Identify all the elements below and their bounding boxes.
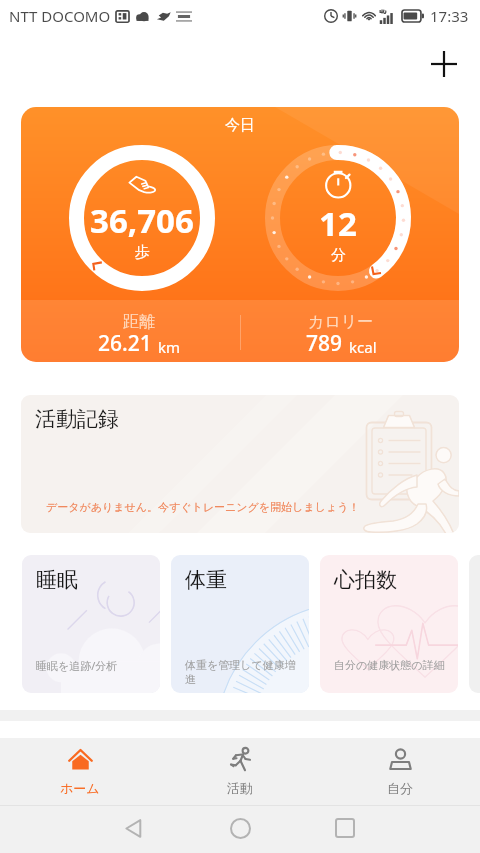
button[interactable]: 活動記録 xyxy=(21,395,459,533)
staticText: 12 xyxy=(319,201,357,246)
button[interactable]: 活動 xyxy=(160,747,320,796)
button[interactable]: Back xyxy=(111,806,155,850)
staticText: 睡眠を追跡/分析 xyxy=(36,658,148,673)
staticText: カロリー xyxy=(308,312,374,332)
staticText: 体重 xyxy=(185,567,227,593)
staticText: 26.21 xyxy=(98,329,152,358)
staticText: データがありません。今すぐトレーニングを開始しましょう！ xyxy=(46,500,360,514)
staticText: kcal xyxy=(349,337,377,357)
button[interactable]: Add xyxy=(424,44,464,84)
staticText: km xyxy=(158,337,181,357)
button[interactable]: 今日 xyxy=(21,107,459,362)
staticText: 心拍数 xyxy=(334,567,397,593)
staticText: 歩 xyxy=(135,243,150,262)
staticText: 自分 xyxy=(387,780,413,796)
staticText: 活動 xyxy=(227,780,253,796)
staticText: 体重を管理して健康増進 xyxy=(185,658,297,686)
staticText: 睡眠 xyxy=(36,567,78,593)
button[interactable]: 睡眠 xyxy=(22,555,160,693)
staticText: 17:33 xyxy=(430,6,469,26)
button[interactable]: Recents xyxy=(323,806,367,850)
staticText: ホーム xyxy=(60,780,100,796)
staticText: NTT DOCOMO xyxy=(9,6,111,26)
staticText: 距離 xyxy=(123,312,155,332)
staticText: 分 xyxy=(331,246,346,265)
button[interactable]: 自分 xyxy=(320,747,480,796)
button[interactable]: ホーム xyxy=(0,747,160,796)
staticText: 今日 xyxy=(225,116,255,135)
button[interactable]: Home xyxy=(218,806,262,850)
staticText: 789 xyxy=(306,329,343,358)
button[interactable]: 心拍数 xyxy=(320,555,458,693)
staticText: 自分の健康状態の詳細 xyxy=(334,658,446,672)
button[interactable]: 体重 xyxy=(171,555,309,693)
staticText: 活動記録 xyxy=(35,406,119,432)
staticText: 36,706 xyxy=(90,198,194,243)
